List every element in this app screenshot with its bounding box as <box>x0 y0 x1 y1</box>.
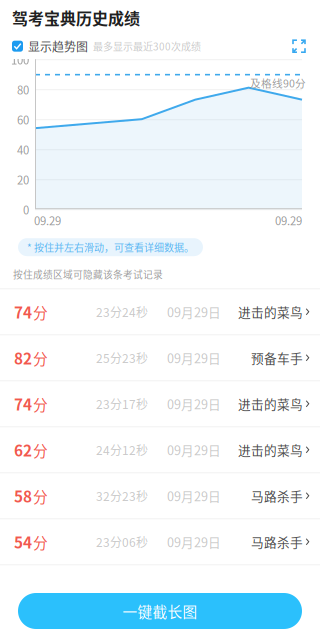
button[interactable]: 一键截长图 <box>18 593 302 629</box>
staticText: 最多显示最近300次成绩 <box>93 39 201 53</box>
staticText: 马路杀手 <box>251 533 303 551</box>
staticText: 82 <box>14 347 32 369</box>
button[interactable]: 显示趋势图 <box>12 37 88 55</box>
staticText: 54 <box>14 531 32 553</box>
staticText: 20 <box>17 171 29 188</box>
staticText: 预备车手 <box>251 349 303 367</box>
staticText: 09月29日 <box>167 395 221 413</box>
staticText: 100 <box>11 51 29 68</box>
staticText: 09月29日 <box>167 487 221 505</box>
staticText: 马路杀手 <box>251 487 303 505</box>
button[interactable]: 62 <box>0 427 320 473</box>
staticText: 23分24秒 <box>96 303 148 320</box>
staticText: 32分23秒 <box>96 487 148 504</box>
staticText: 分 <box>33 347 48 369</box>
staticText: 23分17秒 <box>96 395 148 412</box>
staticText: 25分23秒 <box>96 349 148 366</box>
staticText: 74 <box>14 393 32 415</box>
button[interactable]: 58 <box>0 473 320 519</box>
staticText: 进击的菜鸟 <box>238 441 303 459</box>
staticText: 进击的菜鸟 <box>238 303 303 321</box>
staticText: 60 <box>17 111 29 128</box>
staticText: 0 <box>23 201 29 218</box>
staticText: 分 <box>33 531 48 553</box>
staticText: 40 <box>17 141 29 158</box>
button[interactable]: 54 <box>0 519 320 565</box>
staticText: 09月29日 <box>167 349 221 367</box>
staticText: 09月29日 <box>167 533 221 551</box>
staticText: 分 <box>33 393 48 415</box>
staticText: 显示趋势图 <box>28 37 88 55</box>
staticText: 09.29 <box>275 212 302 229</box>
button[interactable]: 74 <box>0 289 320 335</box>
staticText: 58 <box>14 485 32 507</box>
button[interactable]: * 按住并左右滑动，可查看详细数据。 <box>18 238 203 256</box>
staticText: 74 <box>14 301 32 323</box>
staticText: 驾考宝典历史成绩 <box>12 6 140 29</box>
staticText: 23分06秒 <box>96 533 148 550</box>
staticText: 进击的菜鸟 <box>238 395 303 413</box>
staticText: 分 <box>33 301 48 323</box>
staticText: 分 <box>33 485 48 507</box>
staticText: 分 <box>33 439 48 461</box>
staticText: 及格线90分 <box>250 75 306 91</box>
staticText: 一键截长图 <box>122 600 197 622</box>
staticText: 09.29 <box>34 212 61 229</box>
staticText: 09月29日 <box>167 303 221 321</box>
staticText: 24分12秒 <box>96 441 148 458</box>
staticText: 62 <box>14 439 32 461</box>
staticText: * 按住并左右滑动，可查看详细数据。 <box>27 240 194 254</box>
button[interactable]: 74 <box>0 381 320 427</box>
staticText: 80 <box>17 81 29 98</box>
button[interactable]: 82 <box>0 335 320 381</box>
staticText: 按住成绩区域可隐藏该条考试记录 <box>13 267 163 281</box>
staticText: 09月29日 <box>167 441 221 459</box>
button[interactable]: 全屏查看 <box>289 36 309 56</box>
